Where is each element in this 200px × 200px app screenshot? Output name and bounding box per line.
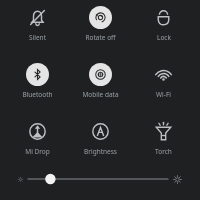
staticText: Brightness	[84, 147, 117, 156]
button[interactable]: Mobile data	[69, 63, 132, 99]
button[interactable]: Brightness slider	[16, 169, 184, 189]
staticText: Mi Drop	[25, 147, 50, 156]
button[interactable]: Rotate off	[69, 6, 132, 42]
staticText: Torch	[155, 147, 172, 156]
button[interactable]: Silent	[5, 6, 69, 42]
button[interactable]: Bluetooth	[5, 63, 69, 99]
staticText: Silent	[29, 33, 46, 42]
button[interactable]: Wi-Fi	[132, 63, 195, 99]
button[interactable]: Brightness	[69, 120, 132, 156]
staticText: Wi-Fi	[156, 90, 171, 99]
button[interactable]: Torch	[132, 120, 195, 156]
staticText: Mobile data	[82, 90, 119, 99]
button[interactable]: Mi Drop	[5, 120, 69, 156]
button[interactable]: Lock	[132, 6, 195, 42]
staticText: Lock	[157, 33, 171, 42]
staticText: Rotate off	[85, 33, 116, 42]
staticText: Bluetooth	[22, 90, 53, 99]
